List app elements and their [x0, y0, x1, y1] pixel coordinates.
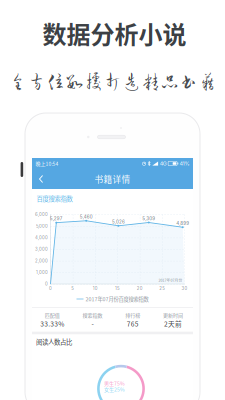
staticText: 女生25%	[104, 386, 125, 393]
staticText: 41%	[179, 160, 189, 167]
staticText: 搜索指数	[82, 311, 102, 319]
staticText: 全方位数据打造精品书籍	[8, 72, 217, 90]
staticText: 晚上10:54	[35, 160, 58, 167]
staticText: 25	[159, 286, 165, 291]
staticText: 2,000	[35, 258, 48, 263]
staticText: 更新时间	[163, 311, 183, 319]
staticText: 数据分析小说	[42, 16, 186, 50]
staticText: 4G	[160, 160, 167, 167]
staticText: 30	[181, 286, 187, 291]
staticText: 匹配值	[45, 311, 60, 319]
staticText: 0	[49, 286, 52, 291]
staticText: 男生75%	[104, 380, 125, 387]
staticText: 阅读人数占比	[36, 337, 72, 346]
staticText: 2天前	[164, 319, 182, 328]
staticText: 1,000	[36, 270, 48, 275]
staticText: 765	[127, 319, 139, 328]
staticText: 百度搜索指数	[36, 194, 72, 203]
staticText: 10	[93, 286, 98, 291]
staticText: -	[91, 319, 93, 328]
staticText: 5,297	[50, 216, 63, 221]
staticText: 5	[71, 286, 74, 291]
staticText: 2017年07月份	[158, 277, 182, 283]
staticText: 5,460	[80, 214, 93, 219]
staticText: 2017年07月份百度搜索指数	[85, 295, 148, 303]
staticText: 0	[45, 281, 48, 287]
button[interactable]: 搜索指数	[72, 308, 112, 332]
staticText: 排行榜	[125, 311, 140, 319]
staticText: 3,000	[35, 247, 48, 252]
staticText: 5,026	[112, 219, 125, 224]
staticText: 33.33%	[40, 319, 64, 328]
staticText: 5,000	[36, 223, 48, 229]
staticText: 4,899	[176, 220, 189, 226]
staticText: 15	[115, 286, 120, 291]
button[interactable]: 更新时间	[153, 308, 193, 332]
staticText: 4,000	[35, 235, 48, 240]
button[interactable]: 排行榜	[112, 308, 153, 332]
staticText: 5,309	[142, 216, 155, 221]
button[interactable]: 匹配值	[32, 308, 72, 332]
button[interactable]: Back	[32, 169, 50, 189]
staticText: 6,000	[35, 212, 48, 217]
staticText: 20	[137, 286, 143, 291]
staticText: 书籍详情	[94, 173, 130, 185]
